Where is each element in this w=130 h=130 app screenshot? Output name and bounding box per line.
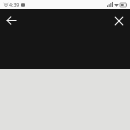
button[interactable]: Close bbox=[108, 10, 129, 31]
staticText: 4:39 bbox=[9, 1, 20, 8]
button[interactable]: Back bbox=[1, 10, 22, 31]
